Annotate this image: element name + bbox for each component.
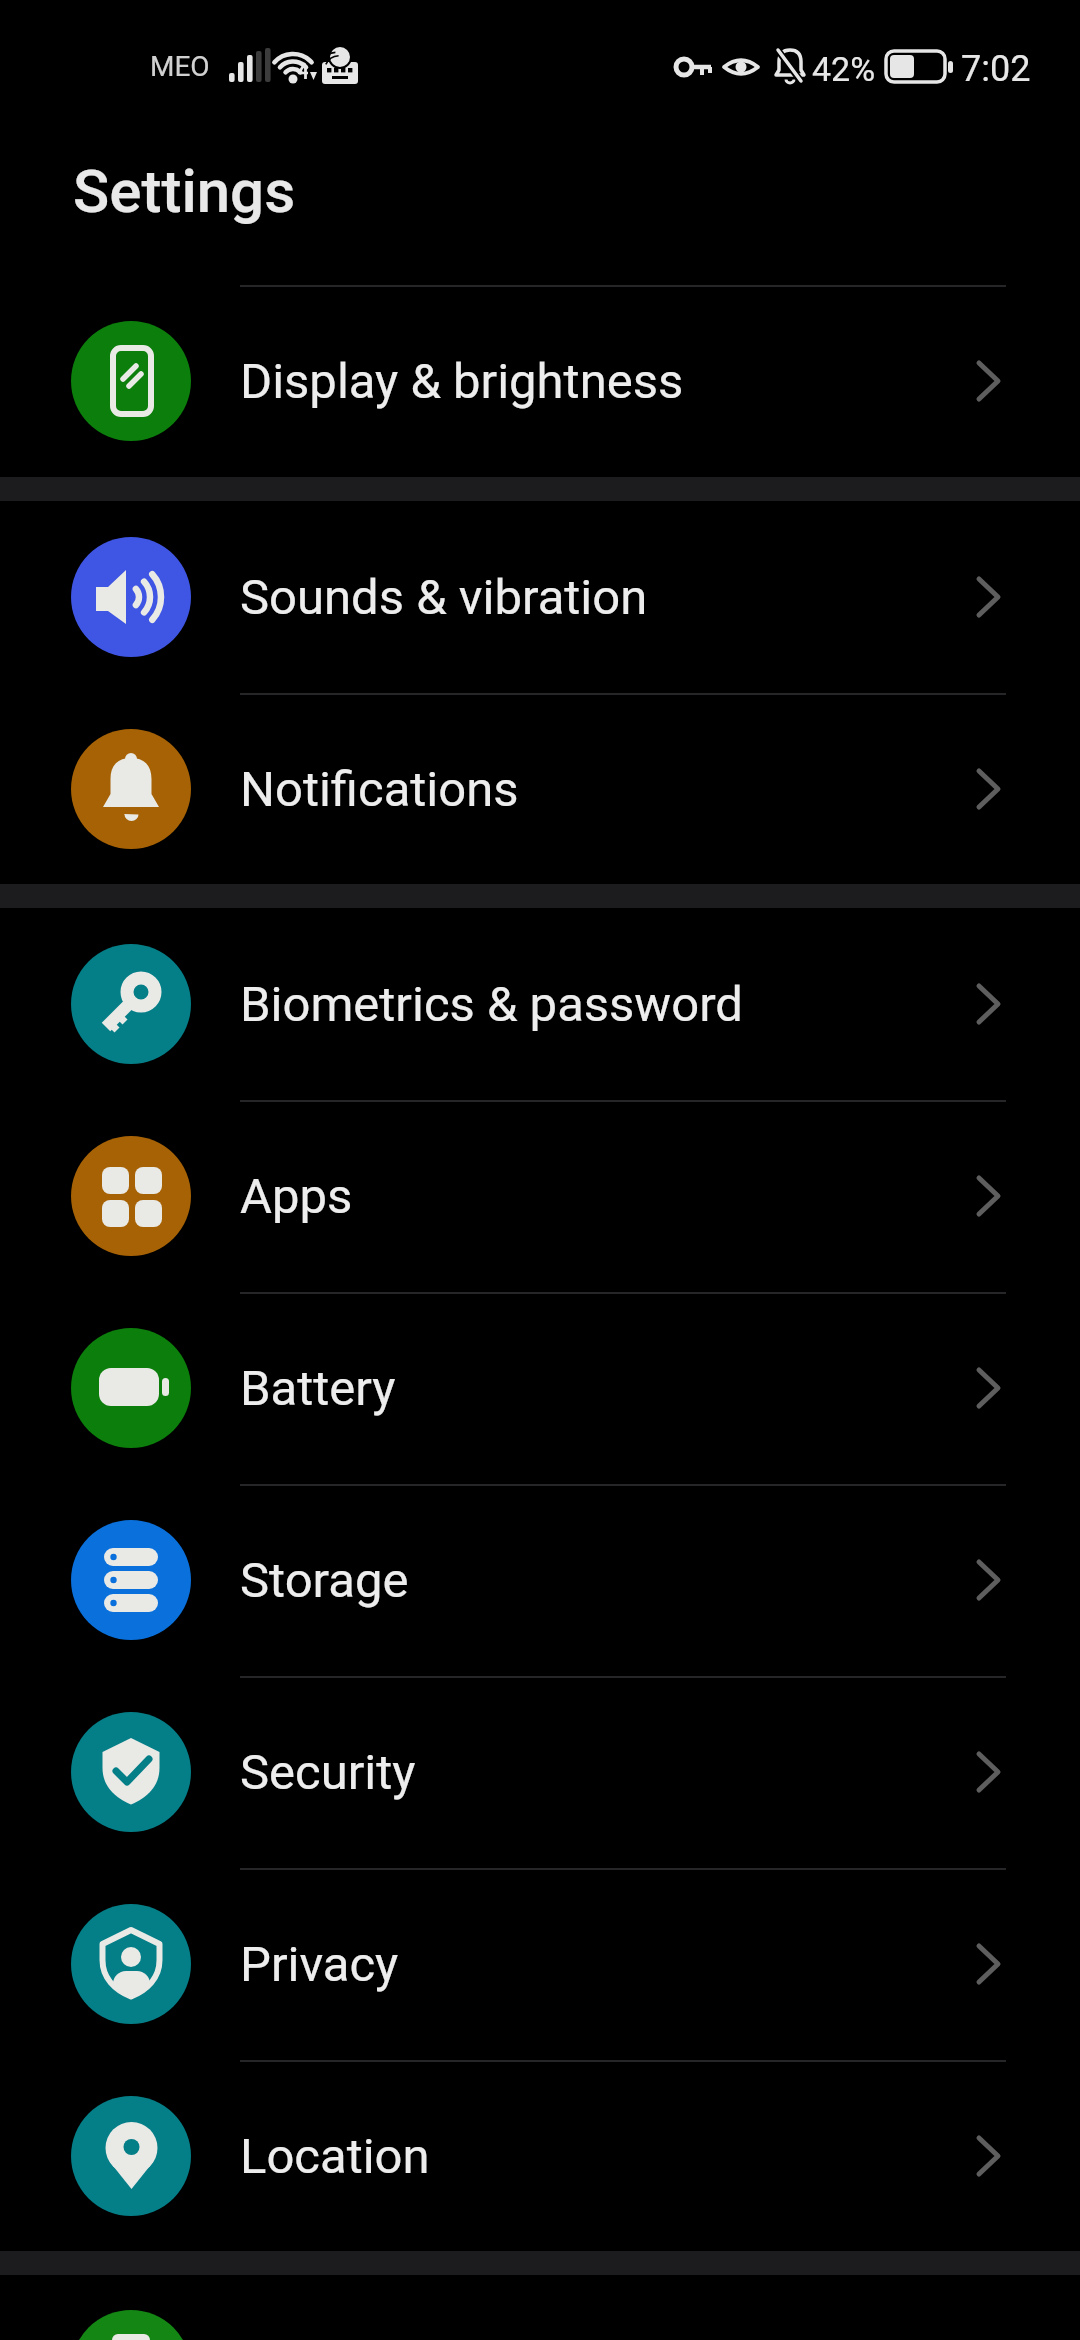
button[interactable]: Storage: [0, 1484, 1080, 1676]
staticText: MEO: [150, 50, 210, 83]
button[interactable]: Sounds & vibration: [0, 501, 1080, 693]
button[interactable]: Display & brightness: [0, 285, 1080, 477]
staticText: Location: [240, 2128, 430, 2185]
button[interactable]: Apps: [0, 1100, 1080, 1292]
button[interactable]: Location: [0, 2060, 1080, 2252]
staticText: Storage: [240, 1552, 409, 1609]
staticText: Sounds & vibration: [240, 569, 648, 626]
button[interactable]: Notifications: [0, 693, 1080, 885]
staticText: Apps: [240, 1168, 353, 1225]
staticText: Privacy: [240, 1936, 399, 1993]
staticText: Notifications: [240, 761, 519, 818]
staticText: Battery: [240, 1360, 396, 1417]
staticText: Security: [240, 1744, 416, 1801]
button[interactable]: Battery: [0, 1292, 1080, 1484]
staticText: 7:02: [961, 48, 1031, 90]
button[interactable]: Security: [0, 1676, 1080, 1868]
staticText: Display & brightness: [240, 353, 684, 410]
staticText: 42%: [812, 49, 876, 89]
button[interactable]: Privacy: [0, 1868, 1080, 2060]
staticText: Biometrics & password: [240, 976, 743, 1033]
staticText: Settings: [73, 156, 296, 226]
button[interactable]: Biometrics & password: [0, 908, 1080, 1100]
